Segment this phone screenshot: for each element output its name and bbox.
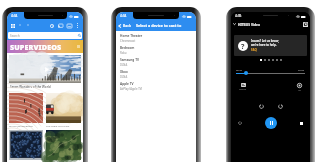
staticText: 4:34 [11, 14, 18, 18]
staticText: Samsung TV [120, 58, 139, 62]
button[interactable] [46, 130, 81, 160]
button[interactable]: Downloads [66, 22, 73, 29]
button[interactable]: Home Theater [116, 31, 196, 43]
staticText: Chromecast [120, 39, 136, 43]
staticText: Issues? Let us know, [251, 39, 279, 43]
button[interactable]: Stop [298, 120, 304, 126]
button[interactable]: Pause [265, 117, 277, 129]
staticText: The Great Dirt Track [46, 124, 70, 127]
button[interactable]: HITBUS Video [233, 22, 260, 26]
staticText: we're here to help. [251, 43, 277, 47]
staticText: Back [123, 23, 131, 28]
staticText: ? [241, 41, 245, 51]
button[interactable]: Cast [303, 22, 308, 27]
button[interactable]: Xbox [116, 67, 196, 79]
button[interactable] [9, 130, 43, 160]
button[interactable]: Rio De Jan Racetrack [9, 93, 43, 127]
button[interactable]: FAQ [251, 48, 257, 52]
staticText: Roku [120, 51, 127, 55]
button[interactable]: ? [234, 35, 307, 56]
button[interactable]: Replay 10 seconds [258, 103, 264, 109]
staticText: Search [10, 34, 20, 38]
button[interactable]: The Great Dirt Track [46, 93, 81, 127]
staticText: DLNA [120, 75, 128, 79]
staticText: Rio De Jan Racetrack [9, 124, 33, 127]
staticText: HD [298, 89, 301, 92]
staticText: 4:35 [235, 14, 242, 18]
button[interactable] [9, 55, 81, 83]
button[interactable]: Back [116, 23, 133, 28]
button[interactable]: HD [297, 83, 302, 92]
button[interactable]: Forward 10 seconds [277, 103, 283, 109]
staticText: 4:34 [120, 14, 127, 18]
staticText: Xbox [120, 70, 128, 74]
button[interactable]: History [48, 22, 55, 29]
button[interactable]: Cast [57, 22, 64, 29]
staticText: Subtitle [239, 88, 247, 91]
staticText: AirPlay (Apple TV) [120, 87, 143, 91]
button[interactable]: Menu [9, 22, 16, 29]
staticText: Bedroom [120, 46, 135, 50]
button[interactable]: Bedroom [116, 43, 196, 55]
button[interactable]: SUPERVIDEOS [7, 40, 83, 53]
button[interactable]: Repeat [237, 120, 243, 126]
button[interactable]: Search [8, 32, 82, 39]
staticText: Apple TV [120, 82, 134, 86]
staticText: DLNA [120, 63, 128, 67]
staticText: Select a device to cast to [136, 23, 182, 28]
staticText: Home Theater [120, 34, 143, 38]
staticText: HITBUS Video [238, 22, 260, 26]
button[interactable]: Samsung TV [116, 55, 196, 67]
button[interactable]: Apple TV [116, 79, 196, 91]
staticText: 04:02 [298, 68, 305, 71]
button[interactable]: Subtitle [239, 83, 247, 91]
staticText: 00:37 [236, 68, 243, 71]
staticText: SUPERVIDEOS [10, 42, 62, 52]
staticText: Seven Wonders of the World [10, 85, 51, 89]
button[interactable]: More options [74, 22, 81, 29]
